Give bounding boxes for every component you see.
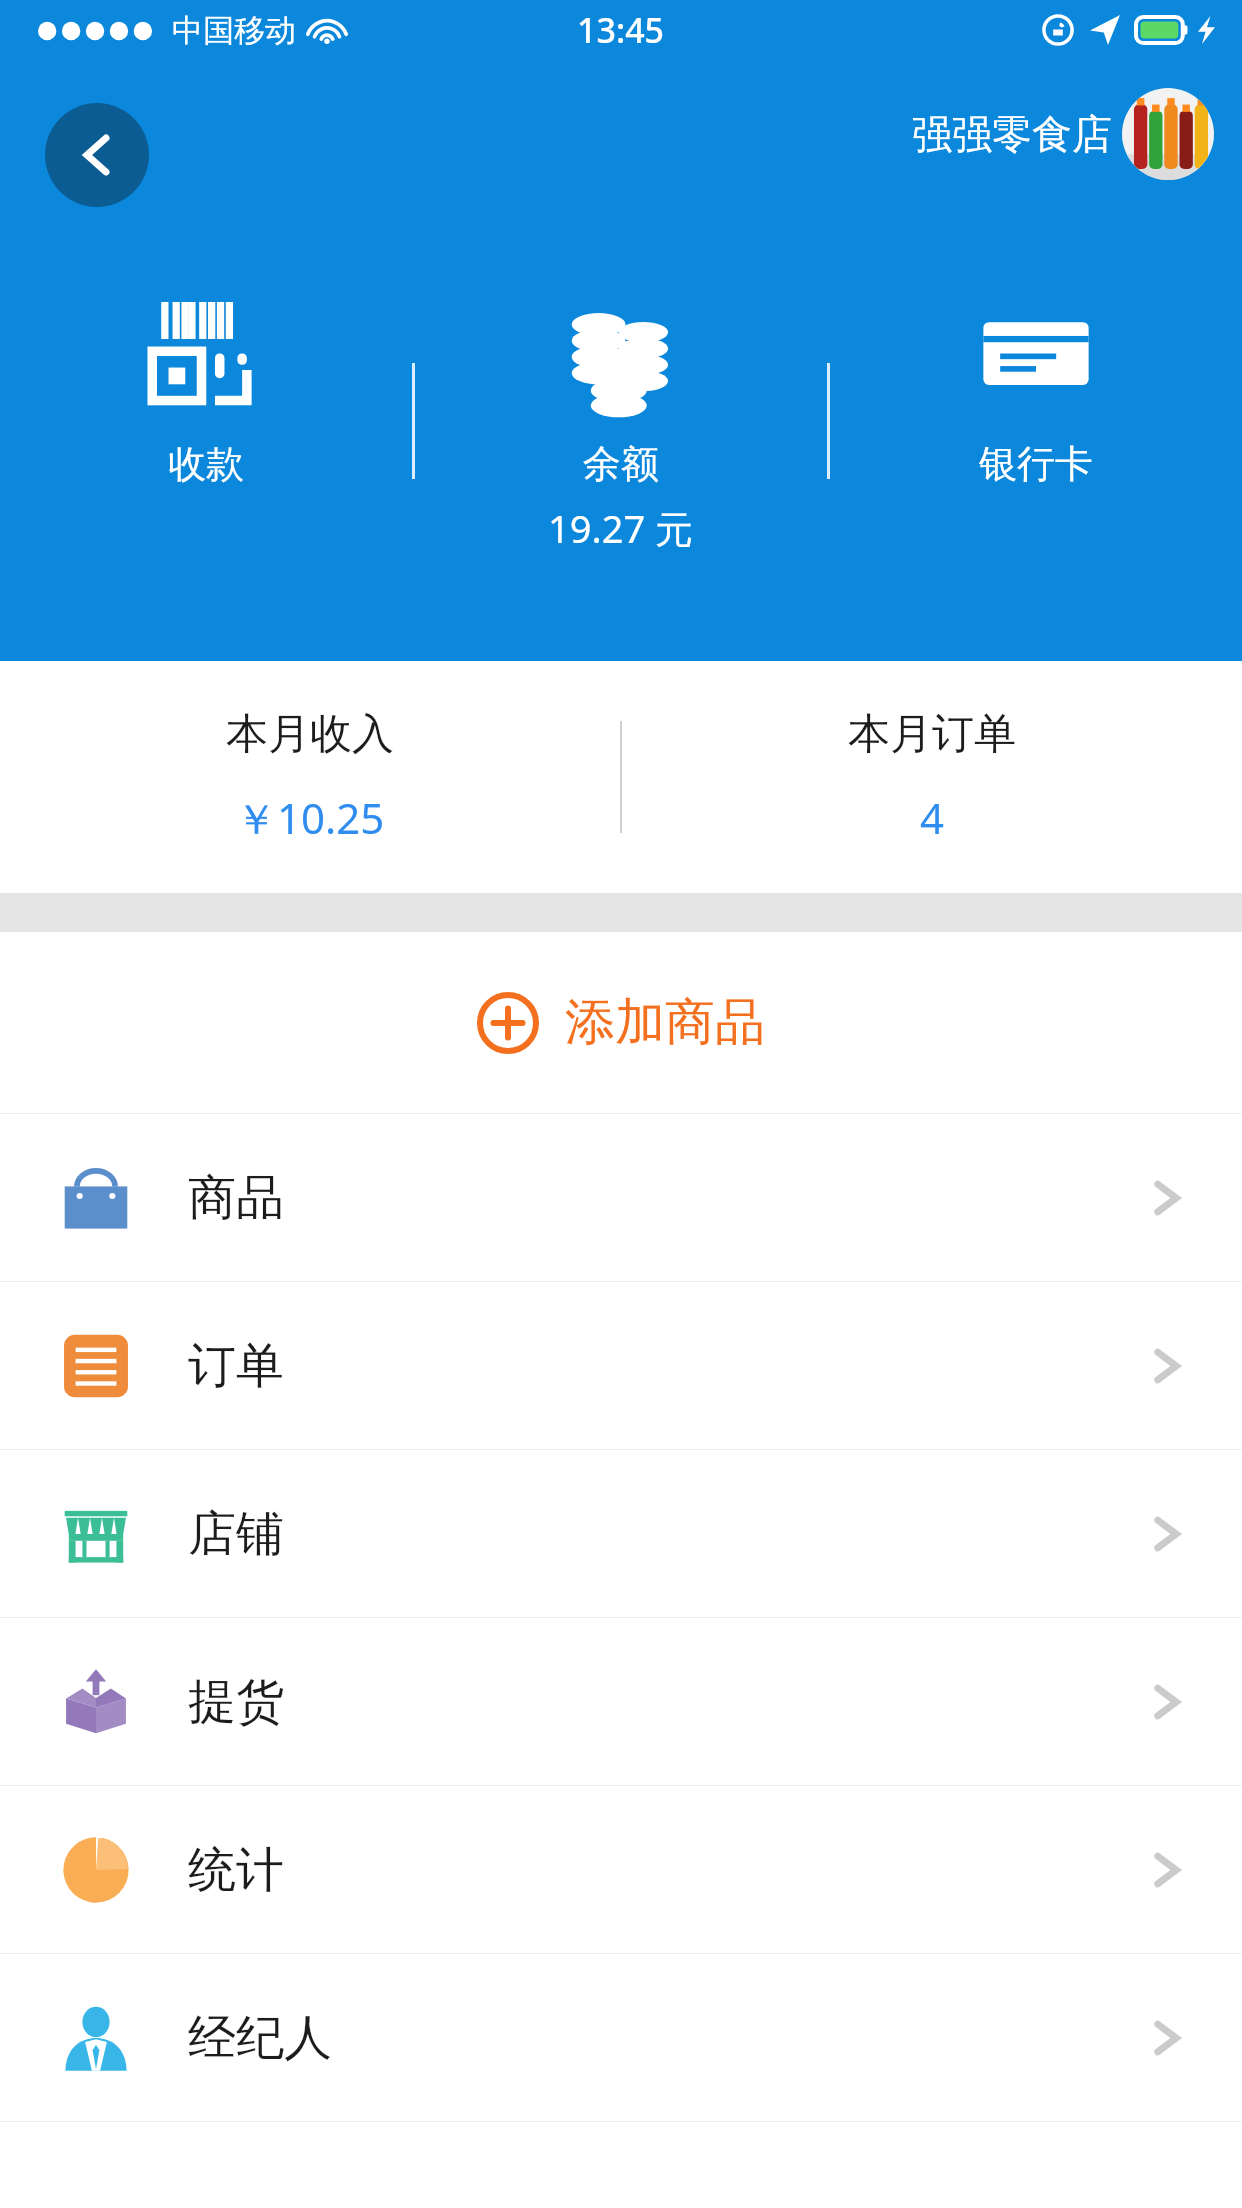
button[interactable]: 强强零食店 — [912, 88, 1214, 180]
button[interactable]: Collect payment — [0, 290, 412, 488]
staticText: 商品 — [188, 1168, 284, 1228]
staticText: 经纪人 — [188, 2008, 332, 2068]
staticText: 强强零食店 — [912, 109, 1112, 159]
other: Statistics — [62, 1836, 130, 1904]
staticText: 本月订单 — [848, 708, 1016, 761]
button[interactable]: Balance — [415, 290, 827, 554]
staticText: 4 — [920, 789, 945, 846]
staticText: 订单 — [188, 1336, 284, 1396]
button[interactable]: 添加商品 — [0, 932, 1242, 1113]
staticText: 收款 — [168, 440, 244, 488]
button[interactable]: 本月订单 — [622, 661, 1242, 893]
button[interactable]: Bank card — [830, 290, 1242, 488]
staticText: 余额 — [583, 440, 659, 488]
other: Balance — [565, 302, 677, 414]
other: Bank card — [980, 302, 1092, 414]
other: Products — [62, 1164, 130, 1232]
staticText: 13:45 — [577, 7, 665, 53]
button[interactable]: Back — [45, 103, 149, 207]
staticText: ￥10.25 — [235, 789, 385, 846]
button[interactable]: Shop — [0, 1450, 1242, 1617]
button[interactable]: Statistics — [0, 1786, 1242, 1953]
button[interactable]: Orders — [0, 1282, 1242, 1449]
staticText: 统计 — [188, 1840, 284, 1900]
button[interactable]: Agent — [0, 1954, 1242, 2121]
button[interactable]: Products — [0, 1114, 1242, 1281]
staticText: 本月收入 — [226, 708, 394, 761]
other: Shop — [62, 1500, 130, 1568]
other: Collect payment — [150, 302, 262, 414]
button[interactable]: Pickup — [0, 1618, 1242, 1785]
staticText: 提货 — [188, 1672, 284, 1732]
staticText: 店铺 — [188, 1504, 284, 1564]
staticText: 19.27 元 — [548, 502, 694, 554]
other: Agent — [62, 2004, 130, 2072]
staticText: 添加商品 — [565, 991, 765, 1054]
other: Pickup — [62, 1668, 130, 1736]
staticText: 中国移动 — [172, 11, 296, 50]
button[interactable]: 本月收入 — [0, 661, 620, 893]
staticText: 银行卡 — [979, 440, 1093, 488]
other: Orders — [62, 1332, 130, 1400]
